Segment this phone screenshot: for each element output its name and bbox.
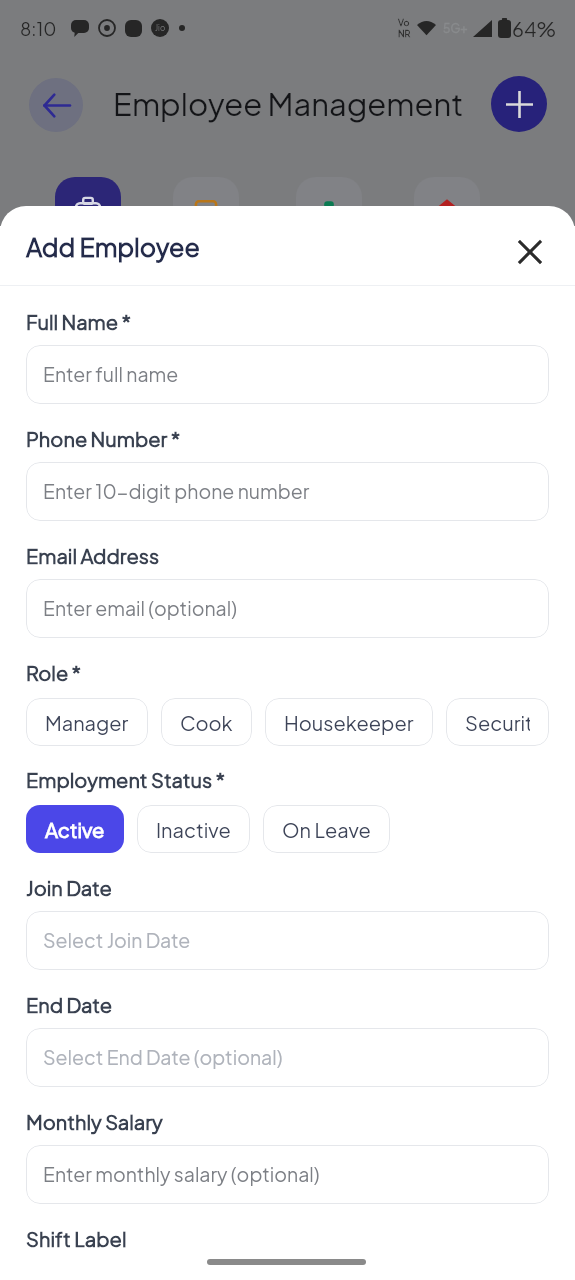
staticText: Employment Status * [26, 767, 226, 792]
staticText: Join Date [26, 875, 112, 900]
button[interactable]: Category [296, 177, 362, 263]
staticText: Select End Date (optional) [43, 1045, 283, 1070]
button[interactable]: Active [26, 805, 124, 853]
button[interactable]: Enter monthly salary (optional) [26, 1145, 549, 1204]
staticText: Email Address [26, 543, 160, 568]
staticText: 64% [512, 16, 557, 41]
button[interactable]: Category [55, 177, 121, 263]
button[interactable]: Enter full name [26, 345, 549, 404]
staticText: Jio [155, 23, 166, 33]
staticText: NR [398, 28, 411, 39]
staticText: Add Employee [26, 231, 200, 262]
staticText: Inactive [156, 817, 231, 842]
button[interactable]: On Leave [263, 805, 390, 853]
staticText: Manager [45, 710, 129, 735]
staticText: Enter email (optional) [43, 596, 237, 621]
staticText: Housekeeper [284, 710, 414, 735]
staticText: Monthly Salary [26, 1109, 163, 1134]
staticText: Security [465, 710, 530, 735]
staticText: Role * [26, 660, 82, 685]
staticText: Active [45, 817, 105, 842]
staticText: End Date [26, 992, 112, 1017]
staticText: Enter monthly salary (optional) [43, 1162, 320, 1187]
button[interactable]: Enter email (optional) [26, 579, 549, 638]
staticText: Enter 10-digit phone number [43, 479, 310, 504]
staticText: Shift Label [26, 1226, 127, 1251]
button[interactable]: Security [446, 698, 549, 746]
staticText: Full Name * [26, 309, 132, 334]
button[interactable]: Back [29, 78, 83, 132]
button[interactable]: Cook [161, 698, 252, 746]
button[interactable]: Inactive [137, 805, 250, 853]
button[interactable]: Category [414, 177, 480, 263]
button[interactable]: Select Join Date [26, 911, 549, 970]
button[interactable]: Housekeeper [265, 698, 433, 746]
staticText: 5G+ [443, 21, 468, 36]
button[interactable]: Add employee [491, 76, 547, 132]
staticText: Employee Management [113, 84, 464, 123]
button[interactable]: Manager [26, 698, 148, 746]
button[interactable]: Close [508, 230, 552, 274]
staticText: 8:10 [20, 17, 57, 40]
staticText: Select Join Date [43, 928, 191, 953]
button[interactable]: Enter 10-digit phone number [26, 462, 549, 521]
staticText: On Leave [282, 817, 371, 842]
button[interactable]: Category [173, 177, 239, 263]
staticText: Enter full name [43, 362, 179, 387]
staticText: Vo [398, 17, 410, 28]
staticText: Cook [180, 710, 233, 735]
staticText: Phone Number * [26, 426, 181, 451]
button[interactable]: Select End Date (optional) [26, 1028, 549, 1087]
